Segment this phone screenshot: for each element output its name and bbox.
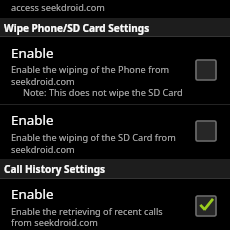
staticText: Wipe Phone/SD Card Settings	[4, 21, 150, 35]
staticText: access seekdroid.com	[11, 1, 105, 14]
button[interactable]: Enable retrieving of recent calls, check…	[195, 195, 217, 217]
button[interactable]: Enable wiping of the Phone, not checked	[195, 59, 217, 81]
staticText: Enable	[11, 44, 54, 62]
staticText: Enable	[11, 111, 54, 129]
staticText: from seekdroid.com	[11, 216, 98, 229]
button[interactable]: Enable retrieving of recent calls	[0, 179, 230, 230]
staticText: Enable the wiping of the Phone from	[11, 63, 170, 76]
button[interactable]: Enable wiping of the SD Card, not checke…	[195, 120, 217, 142]
staticText: seekdroid.com	[11, 75, 75, 88]
staticText: Enable the wiping of the SD Card from	[11, 131, 176, 144]
staticText: Enable the retrieving of recent calls	[11, 205, 163, 218]
staticText: seekdroid.com	[11, 143, 75, 156]
staticText: Enable	[11, 185, 54, 203]
staticText: Note: This does not wipe the SD Card	[23, 86, 183, 99]
button[interactable]: Enable wiping of the Phone	[0, 37, 230, 105]
staticText: Call History Settings	[4, 162, 105, 176]
button[interactable]: Enable wiping of the SD Card	[0, 105, 230, 159]
